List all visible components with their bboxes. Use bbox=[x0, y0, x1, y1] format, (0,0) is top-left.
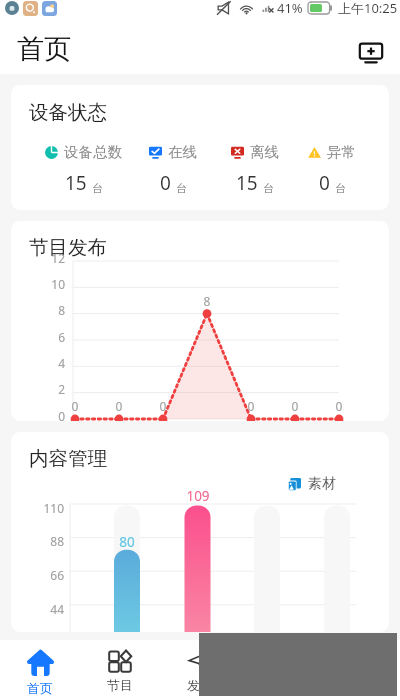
staticText: 8 bbox=[195, 293, 219, 309]
staticText: 8 bbox=[35, 302, 65, 318]
staticText: 0 bbox=[151, 398, 175, 414]
button[interactable]: Add screen bbox=[356, 38, 386, 68]
staticText: 15 bbox=[65, 170, 87, 196]
staticText: 台 bbox=[335, 181, 346, 195]
button[interactable]: 异常 bbox=[308, 143, 356, 196]
staticText: 上午10:25 bbox=[338, 0, 398, 17]
staticText: 0 bbox=[327, 398, 351, 414]
staticText: 80 bbox=[107, 533, 147, 551]
staticText: 在线 bbox=[168, 143, 197, 161]
staticText: 6 bbox=[35, 329, 65, 345]
button[interactable]: 在线 bbox=[149, 143, 197, 196]
staticText: 0 bbox=[283, 398, 307, 414]
staticText: 素材 bbox=[308, 475, 336, 493]
button[interactable]: 发布 bbox=[160, 641, 240, 700]
staticText: 41% bbox=[277, 0, 303, 17]
staticText: 台 bbox=[176, 181, 187, 195]
staticText: 10 bbox=[35, 276, 65, 292]
staticText: 4 bbox=[35, 355, 65, 371]
staticText: 内容管理 bbox=[29, 446, 107, 471]
staticText: 0 bbox=[319, 170, 330, 196]
button[interactable]: 素材 bbox=[288, 475, 336, 493]
button[interactable]: 素材 bbox=[240, 641, 320, 700]
staticText: 0 bbox=[35, 408, 65, 421]
button[interactable]: 首页 bbox=[0, 641, 80, 700]
staticText: 台 bbox=[92, 181, 103, 195]
staticText: 台 bbox=[263, 181, 274, 195]
button[interactable]: 设备总数 bbox=[45, 143, 122, 196]
staticText: 节目 bbox=[107, 677, 133, 693]
staticText: 0 bbox=[160, 170, 171, 196]
staticText: 0 bbox=[239, 398, 263, 414]
staticText: 110 bbox=[24, 500, 64, 516]
staticText: 异常 bbox=[327, 143, 356, 161]
staticText: 设备总数 bbox=[64, 143, 122, 161]
staticText: 109 bbox=[178, 487, 218, 505]
staticText: 15 bbox=[236, 170, 258, 196]
staticText: 0 bbox=[63, 398, 87, 414]
staticText: 节目发布 bbox=[29, 235, 107, 260]
staticText: 离线 bbox=[250, 143, 279, 161]
staticText: 设备状态 bbox=[29, 100, 107, 125]
staticText: 12 bbox=[35, 250, 65, 266]
staticText: 66 bbox=[24, 567, 64, 583]
button[interactable]: 节目 bbox=[80, 641, 160, 700]
staticText: 88 bbox=[24, 533, 64, 549]
button[interactable]: 离线 bbox=[231, 143, 279, 196]
staticText: 发布 bbox=[187, 677, 213, 693]
staticText: 2 bbox=[35, 381, 65, 397]
staticText: 0 bbox=[107, 398, 131, 414]
staticText: 首页 bbox=[27, 680, 53, 696]
staticText: 44 bbox=[24, 601, 64, 617]
staticText: 首页 bbox=[17, 32, 71, 66]
button[interactable]: 我的 bbox=[320, 641, 400, 700]
